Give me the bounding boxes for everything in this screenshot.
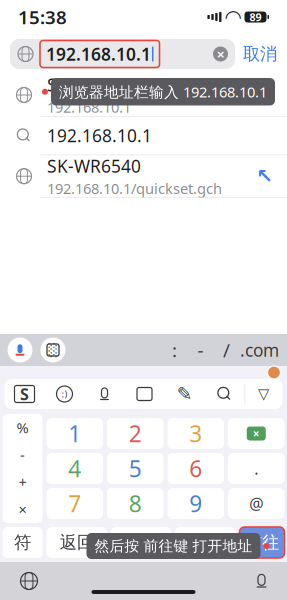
staticText: 取消 [243,43,277,65]
button[interactable]: 8 [107,488,163,519]
button[interactable]: 取消 [243,43,277,65]
staticText: _ [201,531,209,554]
staticText: 192.168.10.1 [47,97,131,117]
staticText: ↖ [256,165,273,188]
staticText: % [16,418,28,437]
staticText: 1 [68,418,81,448]
button[interactable]: Emoji [44,379,84,409]
staticText: 7 [68,488,81,518]
button[interactable]: 2 [107,418,163,449]
staticText: 然后按 前往键 打开地址 [94,537,252,555]
button[interactable]: Clear text [213,46,228,61]
button[interactable]: 前往 [239,527,284,558]
button[interactable]: : [161,336,187,364]
button[interactable]: 3 [167,418,224,449]
staticText: ◠ [225,6,240,28]
button[interactable]: SK-WR6540 [0,155,287,198]
staticText: 返回 [60,532,94,553]
staticText: 3 [189,418,202,448]
button[interactable]: Voice [84,379,124,409]
staticText: ▽ [258,386,269,402]
staticText: - [20,445,25,465]
button[interactable]: Voice input [7,337,32,362]
staticText: SK-WR6540 [47,73,141,96]
button[interactable]: 7 [46,488,103,519]
staticText: : [172,338,177,362]
staticText: 浏览器地址栏输入 192.168.10.1 [59,82,267,101]
staticText: S [20,383,29,405]
staticText: 192.168.10.1 [47,124,152,147]
staticText: 192.168.10.1 [46,42,151,65]
button[interactable]: - [187,336,213,364]
button[interactable]: Dictation [256,574,266,588]
button[interactable]: Delete [228,418,284,449]
staticText: 5 [129,453,142,483]
button[interactable]: 4 [46,453,103,484]
staticText: .com [240,338,279,361]
button[interactable]: 192.168.10.1 [0,117,287,155]
staticText: / [223,338,230,362]
button[interactable]: @ [228,488,284,519]
button[interactable]: 6 [167,453,224,484]
button[interactable]: 1 [46,418,103,449]
button[interactable]: 符 [2,527,42,558]
staticText: :) [61,388,67,400]
staticText: 前往 [245,532,279,553]
staticText: 9 [189,488,202,518]
button[interactable]: Search [204,379,244,409]
staticText: ░ [48,343,57,357]
button[interactable]: Sogou input [4,379,44,409]
button[interactable]: SK-WR6540 [0,74,287,117]
button[interactable]: Scan code [40,337,65,362]
button[interactable]: .com [239,336,279,364]
staticText: 2 [129,418,142,448]
staticText: SK-WR6540 [47,154,141,177]
button[interactable]: 9 [167,488,224,519]
staticText: ✎ [176,383,192,405]
staticText: @ [249,493,263,514]
staticText: 8 [129,488,142,518]
button[interactable]: 0 [111,527,171,558]
staticText: 6 [189,453,202,483]
button[interactable]: . [228,453,284,484]
button[interactable]: _ [175,527,235,558]
staticText: × [216,44,224,64]
button[interactable]: Collapse keyboard [244,379,282,409]
staticText: 192.168.10.1/quickset.gch [47,178,222,198]
button[interactable]: 返回 [46,527,107,558]
staticText: × [253,425,260,441]
staticText: 符 [14,532,31,553]
button[interactable]: Keyboard [124,379,164,409]
staticText: 0 [134,527,147,557]
staticText: . [254,458,258,479]
staticText: 15:38 [18,5,67,29]
button[interactable]: 5 [107,453,163,484]
button[interactable]: / [213,336,239,364]
button[interactable]: Handwriting [164,379,204,409]
staticText: 89 [249,10,261,24]
staticText: + [18,472,26,492]
staticText: - [197,338,203,362]
button[interactable]: Symbols [2,414,42,523]
staticText: 4 [68,453,81,483]
staticText: × [18,500,26,519]
button[interactable]: Switch keyboard [20,572,37,589]
